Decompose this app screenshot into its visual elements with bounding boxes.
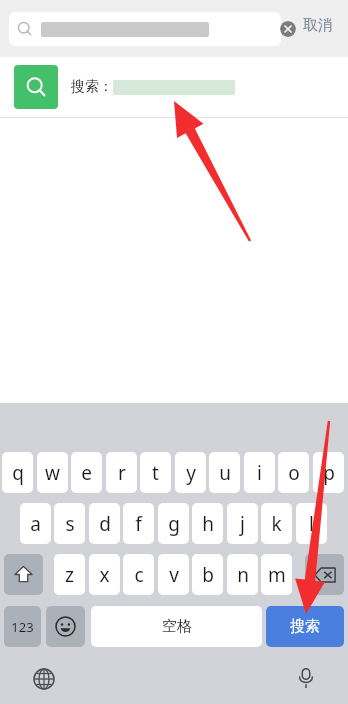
button[interactable]: v [158,554,189,595]
staticText: h [202,511,214,537]
button[interactable]: u [209,452,240,493]
button[interactable]: f [123,503,154,544]
button[interactable]: h [192,503,223,544]
staticText: 空格 [162,617,192,636]
button[interactable]: i [244,452,275,493]
staticText: d [99,511,111,537]
button[interactable]: Shift [4,554,43,595]
button[interactable]: w [37,452,68,493]
staticText: j [240,511,245,537]
button[interactable]: x [89,554,120,595]
button[interactable]: q [2,452,33,493]
staticText: o [288,460,300,486]
staticText: i [257,460,262,486]
staticText: q [12,460,24,486]
button[interactable]: 取消 [303,16,333,35]
button[interactable]: c [123,554,154,595]
staticText: s [65,511,75,537]
button[interactable] [9,12,281,46]
button[interactable]: a [20,503,51,544]
staticText: 123 [11,618,34,636]
staticText: f [135,511,142,537]
button[interactable]: 空格 [91,606,262,647]
staticText: p [323,460,335,486]
staticText: v [169,562,179,588]
staticText: b [202,562,214,588]
button[interactable]: Emoji [46,606,85,647]
staticText: n [237,562,249,588]
button[interactable]: m [261,554,292,595]
button[interactable]: Clear [280,21,296,37]
staticText: 搜索 [290,617,320,636]
staticText: r [118,460,126,486]
button[interactable]: z [54,554,85,595]
staticText: e [81,460,92,486]
staticText: t [152,460,159,486]
button[interactable]: 搜索 [266,606,344,647]
button[interactable]: g [158,503,189,544]
button[interactable]: n [227,554,258,595]
button[interactable]: p [313,452,344,493]
button[interactable]: t [140,452,171,493]
staticText: z [65,562,74,588]
staticText: y [186,460,196,486]
button[interactable]: e [71,452,102,493]
button[interactable]: s [54,503,85,544]
button[interactable]: l [296,503,327,544]
button[interactable]: o [278,452,309,493]
staticText: x [99,562,110,588]
button[interactable]: d [89,503,120,544]
staticText: l [309,511,314,537]
button[interactable]: 123 [4,606,41,647]
button[interactable]: r [106,452,137,493]
button[interactable]: Voice input [292,664,320,692]
staticText: a [30,511,41,537]
staticText: w [45,460,60,486]
button[interactable]: j [227,503,258,544]
staticText: 搜索： [71,78,113,96]
button[interactable]: 搜索： [0,57,348,117]
staticText: 取消 [303,16,333,35]
button[interactable]: Backspace [305,554,344,595]
button[interactable]: k [261,503,292,544]
staticText: u [219,460,231,486]
staticText: g [168,511,180,537]
staticText: c [134,562,144,588]
button[interactable]: b [192,554,223,595]
staticText: k [271,511,282,537]
button[interactable]: Change keyboard [30,665,58,693]
button[interactable]: y [175,452,206,493]
staticText: m [268,562,286,588]
